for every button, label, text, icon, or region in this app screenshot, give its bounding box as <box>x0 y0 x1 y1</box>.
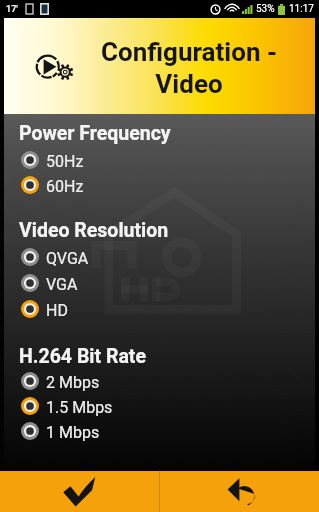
button[interactable]: 50Hz <box>4 147 315 173</box>
staticText: VGA <box>46 275 78 294</box>
staticText: H.264 Bit Rate <box>19 345 146 368</box>
staticText: 11:17 <box>289 3 314 15</box>
button[interactable]: HD <box>4 296 315 322</box>
staticText: Configuration - Video <box>63 37 315 99</box>
button[interactable]: QVGA <box>4 244 315 270</box>
staticText: HD <box>46 301 68 320</box>
staticText: 2 Mbps <box>46 373 100 392</box>
button[interactable]: 1 Mbps <box>4 418 315 444</box>
staticText: 60Hz <box>46 177 84 196</box>
staticText: 1 Mbps <box>46 423 100 442</box>
button[interactable]: 2 Mbps <box>4 368 315 394</box>
staticText: 1.5 Mbps <box>46 398 113 417</box>
button[interactable]: 60Hz <box>4 172 315 198</box>
button[interactable]: 1.5 Mbps <box>4 393 315 419</box>
staticText: Power Frequency <box>19 122 171 145</box>
staticText: QVGA <box>46 249 89 268</box>
staticText: 17' <box>6 4 18 15</box>
button[interactable]: Back <box>160 471 319 512</box>
button[interactable]: VGA <box>4 270 315 296</box>
staticText: Video Resolution <box>19 219 169 242</box>
button[interactable]: Confirm <box>0 471 159 512</box>
staticText: 53% <box>256 3 275 15</box>
staticText: 50Hz <box>46 152 84 171</box>
